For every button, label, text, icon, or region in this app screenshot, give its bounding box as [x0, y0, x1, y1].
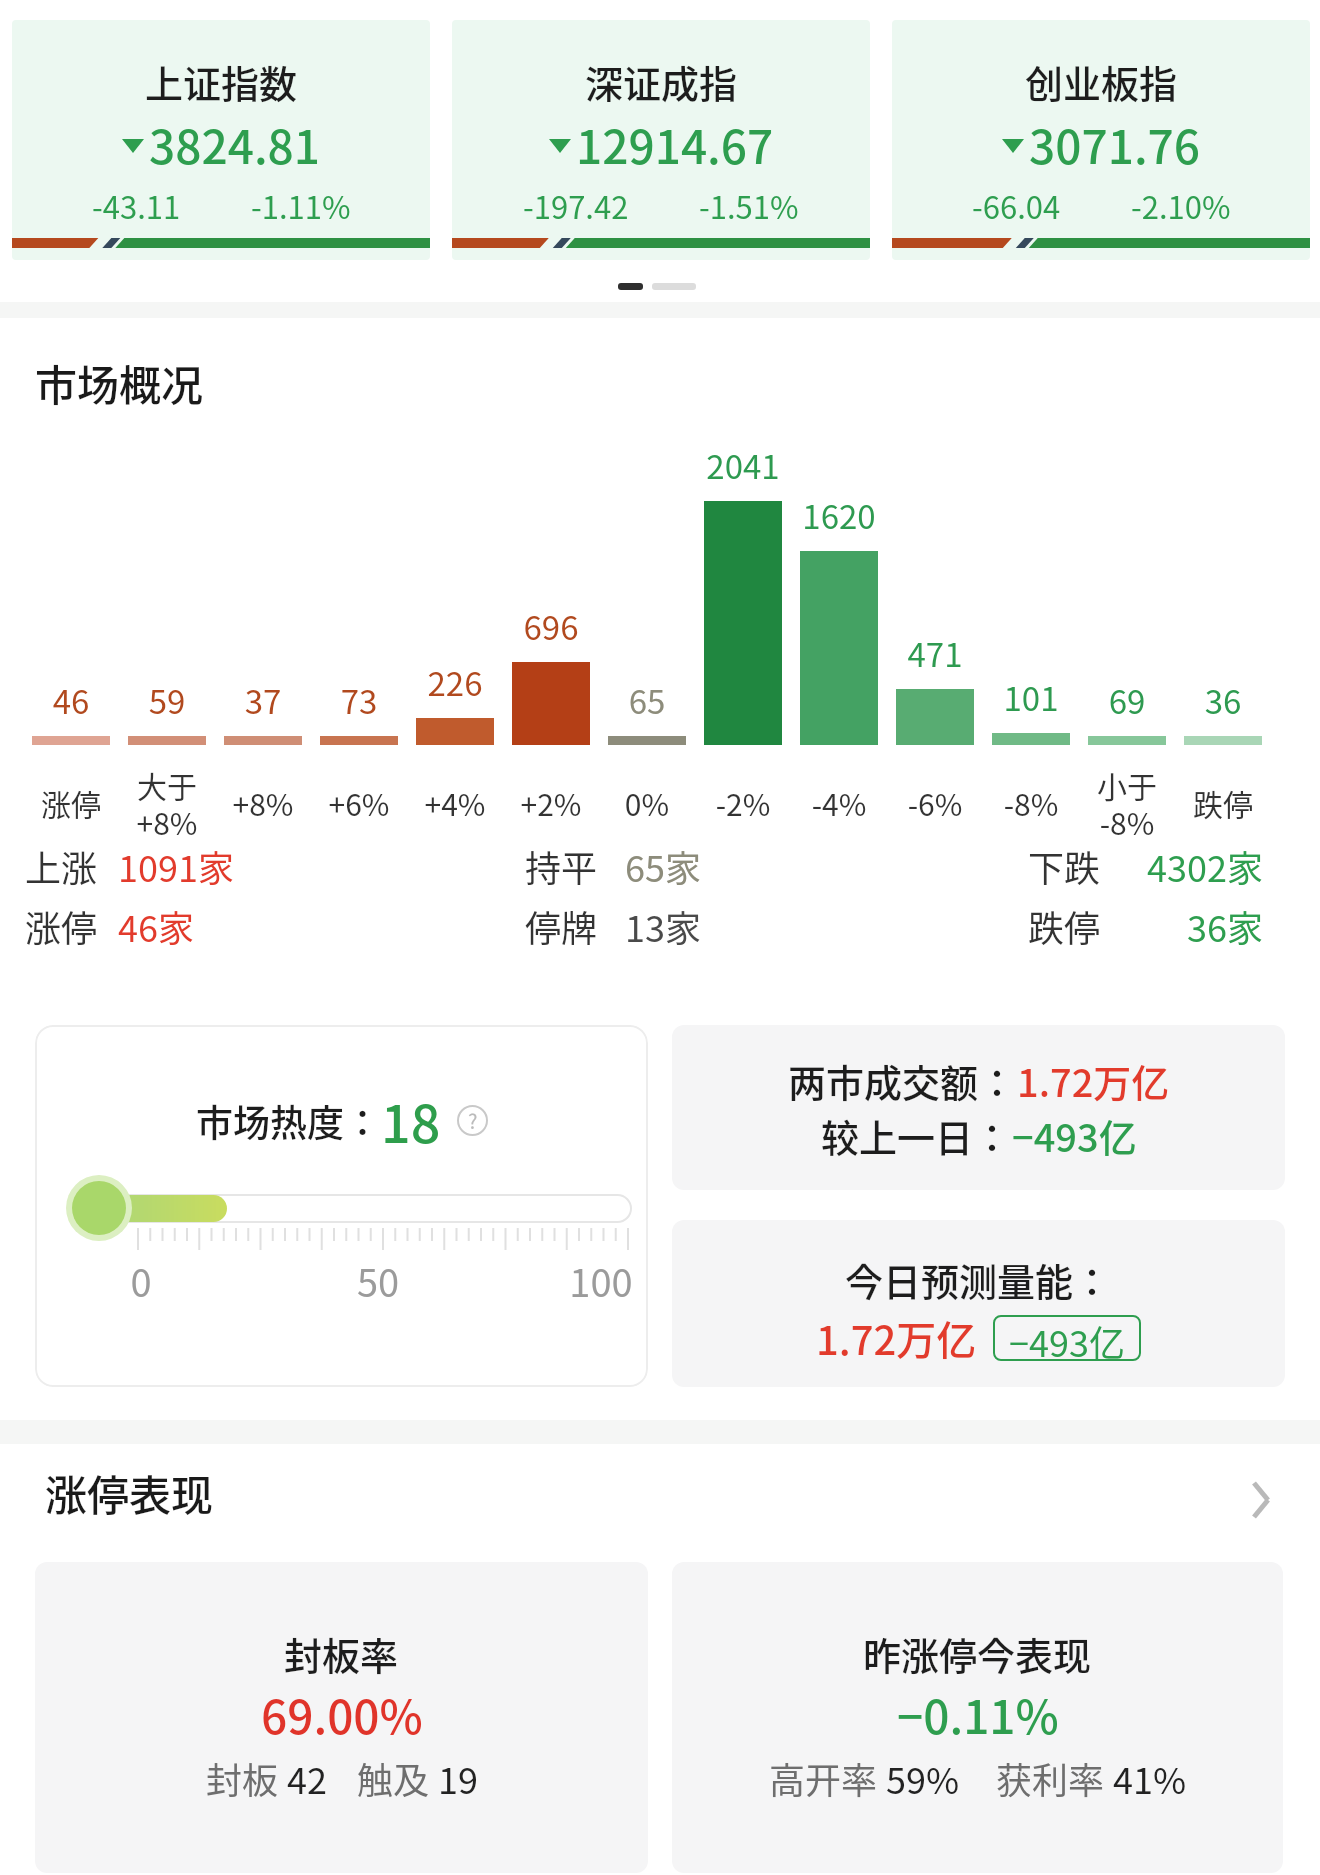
staticText: 0: [101, 1253, 181, 1308]
staticText: 跌停: [1028, 900, 1101, 952]
staticText: 46家: [118, 900, 194, 952]
staticText: 0%: [599, 781, 695, 824]
staticText: 3071.76: [1029, 111, 1201, 178]
staticText: 小于 -8%: [1079, 763, 1175, 843]
button[interactable]: 今日预测量能：: [672, 1220, 1285, 1387]
staticText: -2%: [695, 781, 791, 824]
staticText: 下跌: [1028, 840, 1101, 892]
staticText: 1.72万亿: [1017, 1053, 1170, 1108]
button[interactable]: 创业板指: [892, 20, 1310, 260]
staticText: 46: [23, 676, 119, 724]
staticText: 65家: [625, 840, 701, 892]
staticText: 涨停: [23, 781, 119, 824]
staticText: -66.04: [972, 183, 1061, 228]
staticText: 65: [599, 676, 695, 724]
staticText: 涨停表现: [45, 1462, 214, 1523]
staticText: 696: [503, 602, 599, 650]
staticText: 跌停: [1175, 781, 1271, 824]
staticText: 触及: [357, 1752, 438, 1804]
button[interactable]: 上证指数: [12, 20, 430, 260]
staticText: 昨涨停今表现: [863, 1626, 1092, 1681]
staticText: 69.00%: [261, 1681, 423, 1748]
staticText: 涨停: [25, 900, 98, 952]
staticText: 42: [287, 1752, 327, 1804]
staticText: 41%: [1113, 1752, 1187, 1804]
staticText: −493亿: [1012, 1108, 1137, 1163]
staticText: +6%: [311, 781, 407, 824]
staticText: -43.11: [92, 183, 181, 228]
staticText: 持平: [525, 840, 598, 892]
staticText: 大于 +8%: [119, 763, 215, 843]
staticText: -1.51%: [699, 183, 799, 228]
staticText: 1.72万亿: [816, 1309, 977, 1367]
staticText: +8%: [215, 781, 311, 824]
staticText: ?: [468, 1106, 478, 1135]
staticText: -6%: [887, 781, 983, 824]
staticText: 较上一日：: [821, 1108, 1012, 1163]
button[interactable]: [20, 1450, 1300, 1540]
button[interactable]: 封板率: [35, 1562, 648, 1873]
staticText: +2%: [503, 781, 599, 824]
staticText: 两市成交额：: [788, 1053, 1017, 1108]
staticText: 226: [407, 658, 503, 706]
staticText: 封板率: [284, 1626, 399, 1681]
button[interactable]: 深证成指: [452, 20, 870, 260]
staticText: -8%: [983, 781, 1079, 824]
staticText: −0.11%: [897, 1681, 1059, 1748]
staticText: 2041: [695, 441, 791, 489]
staticText: 59: [119, 676, 215, 724]
staticText: 59%: [886, 1752, 960, 1804]
staticText: 36家: [1063, 900, 1263, 952]
staticText: 市场概况: [35, 352, 204, 413]
staticText: 37: [215, 676, 311, 724]
button[interactable]: 两市成交额：: [672, 1025, 1285, 1190]
staticText: 1620: [791, 491, 887, 539]
staticText: 上涨: [25, 840, 98, 892]
staticText: 4302家: [1063, 840, 1263, 892]
staticText: +4%: [407, 781, 503, 824]
staticText: 1091家: [118, 840, 234, 892]
staticText: 12914.67: [576, 111, 774, 178]
staticText: 101: [983, 673, 1079, 721]
staticText: 36: [1175, 676, 1271, 724]
staticText: 封板: [206, 1752, 287, 1804]
staticText: -197.42: [523, 183, 629, 228]
button[interactable]: 市场热度：: [35, 1025, 648, 1387]
staticText: 高开率: [769, 1752, 886, 1804]
staticText: 停牌: [525, 900, 598, 952]
staticText: -1.11%: [251, 183, 351, 228]
staticText: 上证指数: [145, 54, 298, 109]
staticText: 19: [438, 1752, 478, 1804]
staticText: 18: [381, 1083, 441, 1158]
staticText: 471: [887, 629, 983, 677]
staticText: -2.10%: [1131, 183, 1231, 228]
staticText: 获利率: [996, 1752, 1113, 1804]
staticText: −493亿: [1009, 1315, 1125, 1361]
staticText: 今日预测量能：: [845, 1252, 1112, 1307]
staticText: 深证成指: [585, 54, 738, 109]
staticText: 3824.81: [149, 111, 321, 178]
staticText: 创业板指: [1025, 54, 1178, 109]
button[interactable]: 昨涨停今表现: [672, 1562, 1283, 1873]
staticText: 73: [311, 676, 407, 724]
staticText: 100: [561, 1253, 641, 1308]
staticText: 市场热度：: [196, 1094, 381, 1148]
staticText: 50: [338, 1253, 418, 1308]
staticText: -4%: [791, 781, 887, 824]
staticText: 13家: [625, 900, 701, 952]
staticText: 69: [1079, 676, 1175, 724]
